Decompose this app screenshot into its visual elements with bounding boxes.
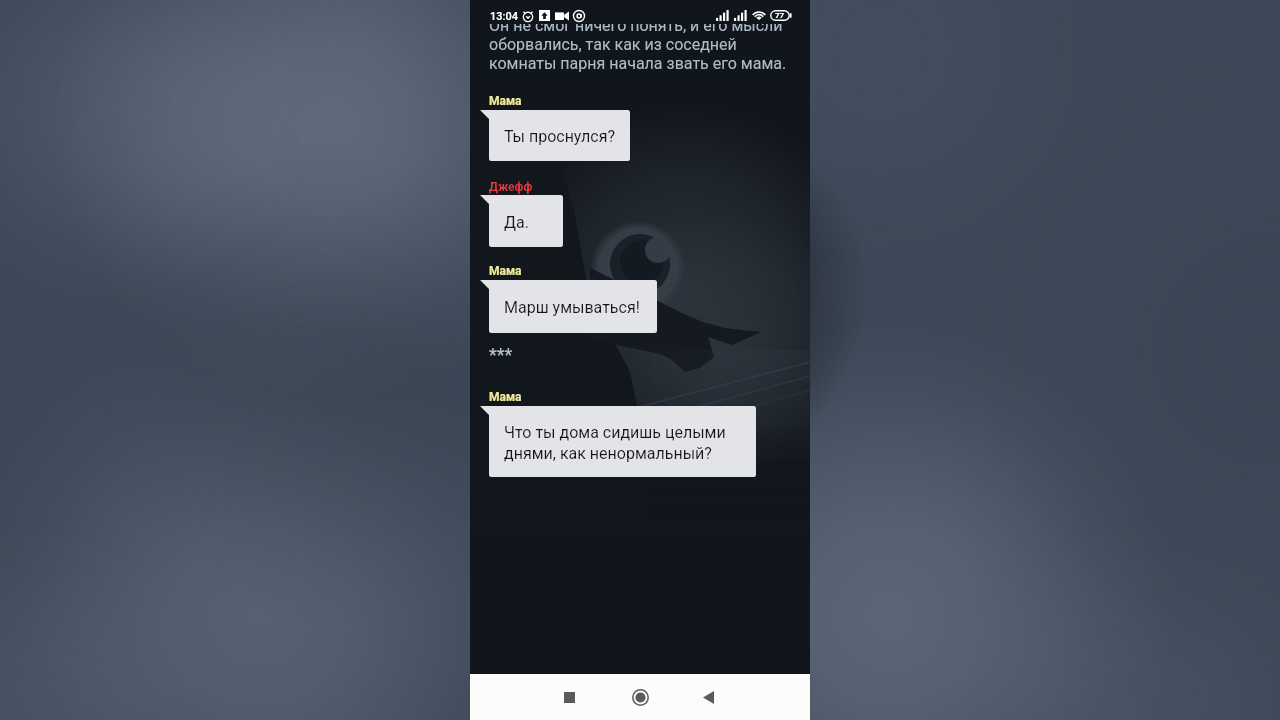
button[interactable]: Марш умываться! [489, 280, 657, 333]
staticText: Мама [489, 94, 522, 108]
button[interactable]: Home [620, 677, 660, 717]
staticText: 77 [775, 11, 785, 20]
staticText: 13:04 [490, 10, 518, 23]
staticText: Он не смог ничего понять, и его мысли об… [489, 24, 787, 72]
button[interactable]: Recent apps [549, 677, 589, 717]
staticText: Ты проснулся? [504, 127, 616, 146]
staticText: Мама [489, 264, 522, 278]
button[interactable]: Ты проснулся? [489, 110, 630, 161]
staticText: Марш умываться! [504, 298, 640, 317]
staticText: Джефф [489, 180, 533, 194]
button[interactable]: Да. [489, 195, 563, 247]
staticText: Что ты дома сидишь целыми днями, как нен… [504, 423, 726, 463]
button[interactable]: Что ты дома сидишь целыми днями, как нен… [489, 406, 756, 477]
staticText: Да. [504, 213, 529, 232]
staticText: Мама [489, 390, 522, 404]
staticText: *** [489, 344, 513, 365]
button[interactable]: Back [688, 677, 728, 717]
